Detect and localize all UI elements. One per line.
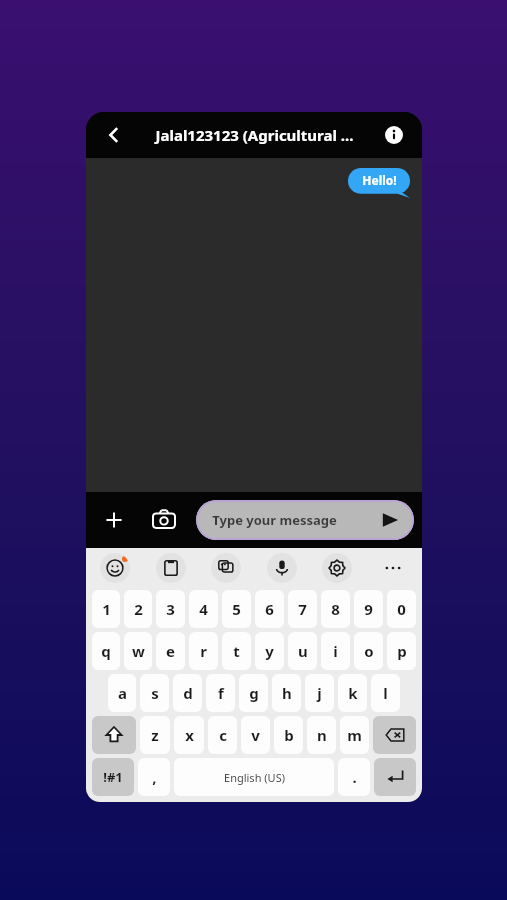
button[interactable]: e	[156, 632, 185, 670]
button[interactable]: c	[208, 716, 237, 754]
staticText: 8	[331, 599, 340, 619]
button[interactable]: h	[272, 674, 301, 712]
button[interactable]: Camera	[144, 500, 184, 540]
button[interactable]: z	[140, 716, 170, 754]
staticText: b	[284, 725, 294, 745]
staticText: 0	[397, 599, 406, 619]
button[interactable]: l	[371, 674, 400, 712]
button[interactable]: n	[307, 716, 336, 754]
staticText: Hello!	[362, 172, 397, 188]
button[interactable]: 0	[387, 590, 416, 628]
staticText: 2	[134, 599, 143, 619]
staticText: 6	[265, 599, 274, 619]
button[interactable]: 2	[124, 590, 152, 628]
staticText: v	[251, 725, 260, 745]
staticText: z	[151, 725, 159, 745]
button[interactable]: Stickers	[211, 553, 241, 583]
button[interactable]: y	[255, 632, 284, 670]
staticText: l	[383, 683, 388, 703]
button[interactable]: English (US)	[174, 758, 334, 796]
button[interactable]: w	[124, 632, 152, 670]
button[interactable]: b	[274, 716, 303, 754]
staticText: n	[317, 725, 327, 745]
button[interactable]: 6	[255, 590, 284, 628]
button[interactable]: 4	[189, 590, 218, 628]
staticText: k	[348, 683, 358, 703]
staticText: e	[166, 641, 175, 661]
staticText: s	[151, 683, 159, 703]
button[interactable]: g	[239, 674, 268, 712]
button[interactable]: Emoji	[100, 553, 130, 583]
button[interactable]: d	[173, 674, 202, 712]
button[interactable]: 1	[92, 590, 120, 628]
button[interactable]: u	[288, 632, 317, 670]
button[interactable]: Shift	[92, 716, 136, 754]
staticText: i	[333, 641, 338, 661]
button[interactable]: q	[92, 632, 120, 670]
button[interactable]: o	[354, 632, 383, 670]
button[interactable]: x	[174, 716, 204, 754]
staticText: h	[282, 683, 292, 703]
button[interactable]: 3	[156, 590, 185, 628]
button[interactable]: !#1	[92, 758, 134, 796]
button[interactable]: Backspace	[373, 716, 416, 754]
staticText: t	[233, 641, 240, 661]
staticText: j	[317, 683, 322, 703]
button[interactable]: m	[340, 716, 369, 754]
staticText: w	[132, 641, 145, 661]
staticText: y	[265, 641, 274, 661]
staticText: q	[101, 641, 111, 661]
staticText: .	[352, 767, 357, 787]
staticText: p	[397, 641, 407, 661]
staticText: 9	[364, 599, 373, 619]
button[interactable]: r	[189, 632, 218, 670]
button[interactable]: Enter	[374, 758, 416, 796]
button[interactable]: a	[108, 674, 136, 712]
staticText: !#1	[103, 768, 123, 786]
button[interactable]: Back	[96, 117, 132, 153]
staticText: g	[249, 683, 259, 703]
staticText: c	[219, 725, 227, 745]
staticText: 1	[102, 599, 111, 619]
button[interactable]: 8	[321, 590, 350, 628]
button[interactable]: i	[321, 632, 350, 670]
button[interactable]: s	[140, 674, 169, 712]
button[interactable]: t	[222, 632, 251, 670]
button[interactable]: k	[338, 674, 367, 712]
button[interactable]: Add attachment	[94, 500, 134, 540]
staticText: a	[118, 683, 127, 703]
button[interactable]: 7	[288, 590, 317, 628]
button[interactable]: Type your message	[196, 500, 414, 540]
staticText: 7	[298, 599, 307, 619]
staticText: 3	[166, 599, 175, 619]
staticText: Jalal123123 (Agricultural ...	[155, 125, 354, 145]
staticText: o	[364, 641, 374, 661]
staticText: x	[185, 725, 194, 745]
button[interactable]: v	[241, 716, 270, 754]
staticText: 4	[199, 599, 208, 619]
button[interactable]: .	[338, 758, 370, 796]
button[interactable]: f	[206, 674, 235, 712]
button[interactable]: Conversation info	[378, 119, 410, 151]
staticText: u	[298, 641, 308, 661]
staticText: r	[200, 641, 207, 661]
staticText: f	[218, 683, 224, 703]
button[interactable]: p	[387, 632, 416, 670]
button[interactable]: 5	[222, 590, 251, 628]
staticText: ,	[152, 767, 157, 787]
button[interactable]: ,	[138, 758, 170, 796]
button[interactable]: Voice input	[267, 553, 297, 583]
staticText: 5	[232, 599, 241, 619]
button[interactable]: Clipboard	[156, 553, 186, 583]
button[interactable]: Send	[376, 506, 404, 534]
staticText: English (US)	[224, 770, 285, 785]
button[interactable]: Settings	[322, 553, 352, 583]
button[interactable]: j	[305, 674, 334, 712]
button[interactable]: More options	[378, 553, 408, 583]
staticText: Type your message	[212, 511, 337, 529]
staticText: m	[347, 725, 362, 745]
button[interactable]: 9	[354, 590, 383, 628]
staticText: d	[183, 683, 193, 703]
